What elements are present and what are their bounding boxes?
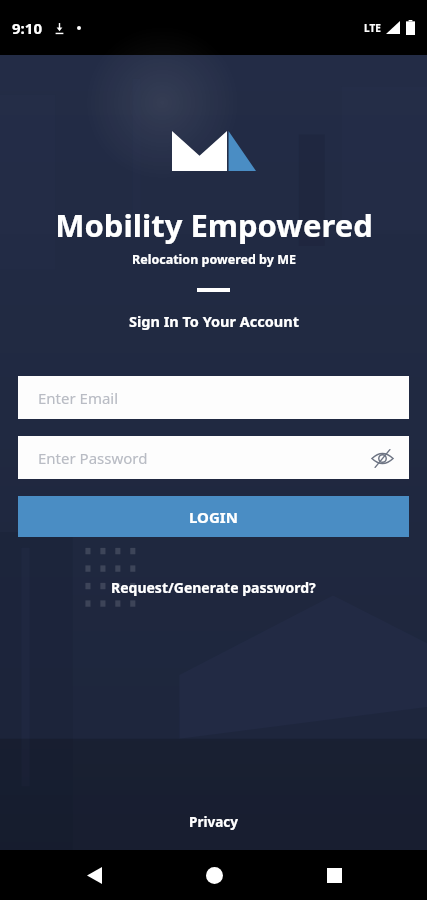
- staticText: LOGIN: [189, 507, 238, 527]
- button[interactable]: LOGIN: [18, 496, 409, 537]
- staticText: Mobility Empowered: [55, 204, 373, 246]
- button[interactable]: Request/Generate password?: [101, 573, 326, 602]
- staticText: LTE: [364, 21, 381, 35]
- button[interactable]: Enter Email: [18, 376, 409, 419]
- staticText: Sign In To Your Account: [129, 311, 299, 331]
- button[interactable]: Enter Password: [18, 436, 409, 479]
- staticText: Relocation powered by ME: [132, 251, 296, 268]
- button[interactable]: Show password: [368, 444, 396, 472]
- button[interactable]: Recent apps: [314, 855, 354, 895]
- staticText: Request/Generate password?: [111, 578, 316, 597]
- staticText: Enter Email: [38, 388, 119, 408]
- staticText: Enter Password: [38, 448, 148, 468]
- staticText: Privacy: [189, 813, 238, 831]
- button[interactable]: Home: [194, 855, 234, 895]
- staticText: 9:10: [12, 18, 42, 38]
- button[interactable]: Privacy: [175, 807, 252, 837]
- button[interactable]: Back: [74, 855, 114, 895]
